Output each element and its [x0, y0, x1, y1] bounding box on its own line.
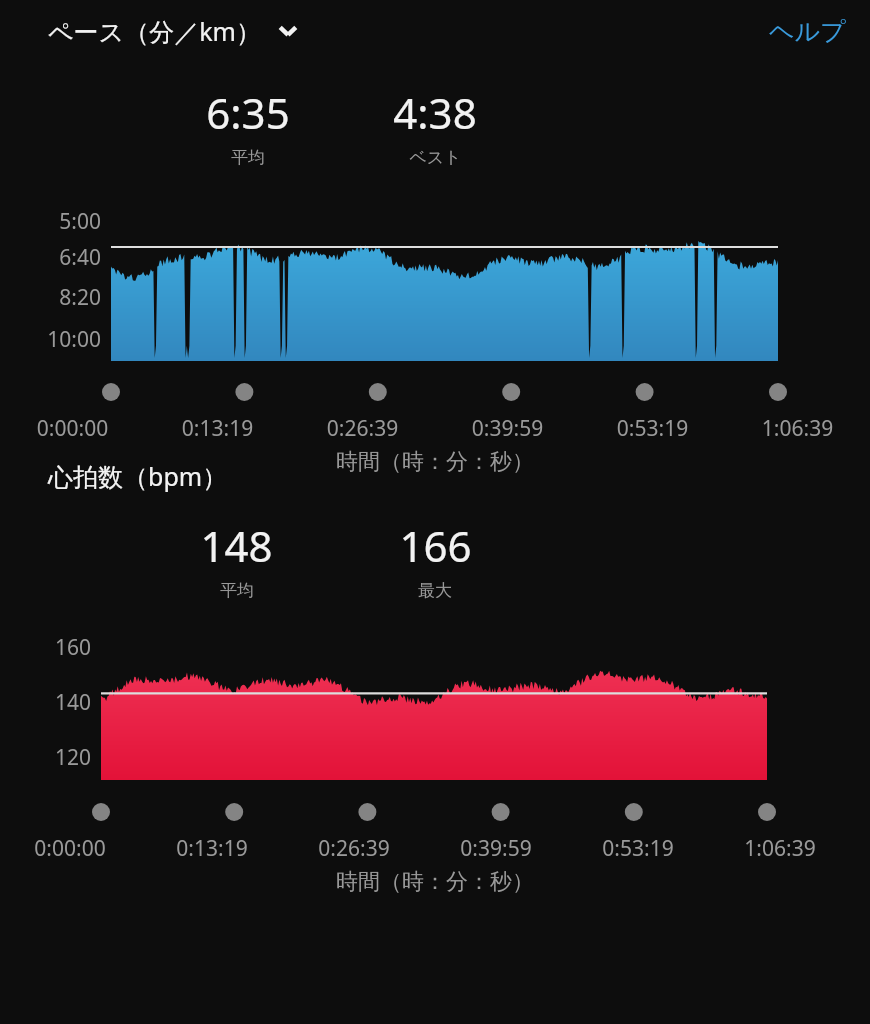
staticText: 140	[0, 688, 91, 717]
staticText: 0:13:19	[142, 834, 282, 863]
staticText: 0:00:00	[0, 834, 140, 863]
staticText: 6:35	[206, 84, 290, 141]
staticText: 0:53:19	[568, 834, 708, 863]
staticText: 0:26:39	[290, 414, 435, 443]
staticText: 5:00	[0, 207, 101, 236]
staticText: 1:06:39	[710, 834, 850, 863]
staticText: 平均	[231, 147, 265, 168]
staticText: 120	[0, 743, 91, 772]
staticText: 10:00	[0, 325, 101, 354]
button[interactable]: 心拍数（bpm）	[48, 459, 870, 493]
staticText: 0:13:19	[145, 414, 290, 443]
staticText: 8:20	[0, 283, 101, 312]
staticText: 0:39:59	[435, 414, 580, 443]
staticText: 148	[200, 517, 273, 574]
staticText: 心拍数（bpm）	[48, 459, 228, 493]
staticText: ヘルプ	[769, 16, 846, 47]
staticText: 166	[399, 517, 472, 574]
staticText: 平均	[220, 580, 254, 601]
staticText: 0:00:00	[0, 414, 145, 443]
staticText: 0:53:19	[580, 414, 725, 443]
staticText: 1:06:39	[725, 414, 870, 443]
button[interactable]: ペース（分／km）	[48, 14, 301, 48]
staticText: 最大	[418, 580, 452, 601]
staticText: 時間（時：分：秒）	[0, 448, 870, 476]
staticText: 160	[0, 633, 91, 662]
staticText: 時間（時：分：秒）	[0, 868, 870, 896]
staticText: 4:38	[393, 84, 477, 141]
staticText: 0:39:59	[426, 834, 566, 863]
staticText: ペース（分／km）	[48, 14, 261, 48]
staticText: ベスト	[409, 147, 462, 168]
button[interactable]: ヘルプ	[769, 16, 846, 47]
other: Change metric	[275, 18, 301, 44]
staticText: 6:40	[0, 243, 101, 272]
staticText: 0:26:39	[284, 834, 424, 863]
